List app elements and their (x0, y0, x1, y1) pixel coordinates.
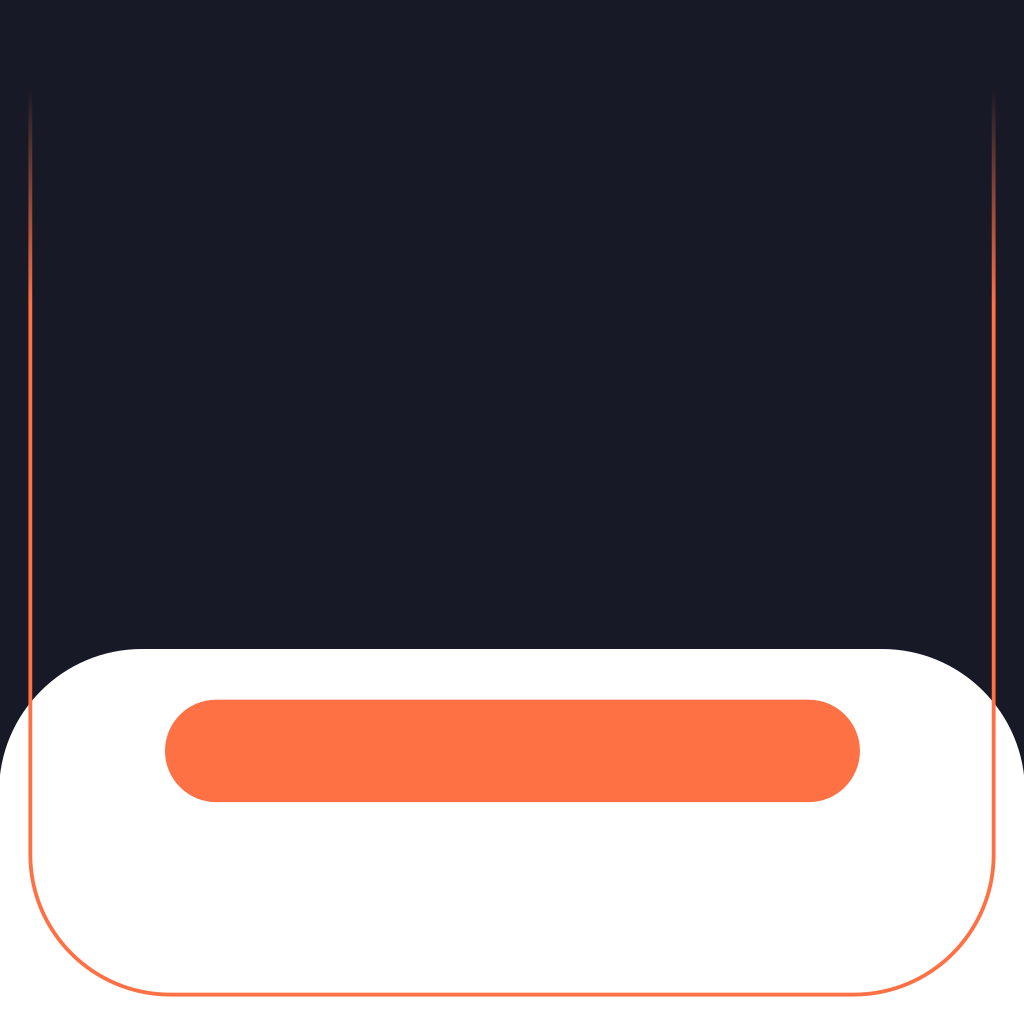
button[interactable]: Continue (165, 700, 860, 802)
